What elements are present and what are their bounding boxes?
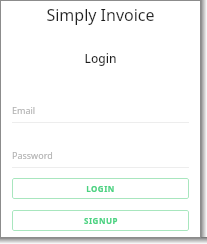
button[interactable]: Email (12, 104, 189, 123)
button[interactable]: SIGNUP (12, 210, 189, 231)
button[interactable]: Password (12, 149, 189, 168)
staticText: LOGIN (86, 183, 115, 194)
staticText: Simply Invoice (0, 4, 201, 26)
staticText: Login (0, 50, 201, 66)
staticText: SIGNUP (84, 215, 118, 226)
staticText: Password (12, 149, 53, 161)
staticText: Email (12, 104, 36, 116)
button[interactable]: LOGIN (12, 178, 189, 199)
